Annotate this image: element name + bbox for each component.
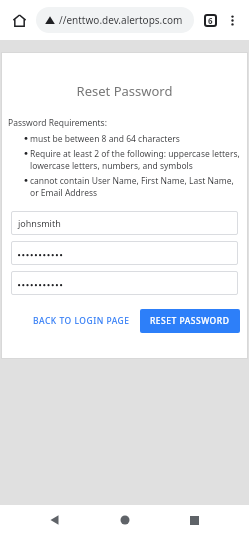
staticText: BACK TO LOGIN PAGE: [33, 315, 130, 327]
button[interactable]: //enttwo.dev.alertops.com: [36, 7, 194, 33]
button[interactable]: Home: [6, 7, 32, 33]
button[interactable]: Recent apps: [179, 505, 209, 535]
button[interactable]: [11, 271, 238, 295]
staticText: Password Requirements:: [8, 117, 107, 129]
button[interactable]: Back: [40, 505, 70, 535]
staticText: Reset Password: [1, 82, 248, 100]
staticText: johnsmith: [18, 217, 61, 229]
staticText: cannot contain User Name, First Name, La…: [30, 175, 241, 199]
staticText: Require at least 2 of the following: upp…: [30, 148, 241, 172]
staticText: RESET PASSWORD: [150, 315, 230, 327]
button[interactable]: Home: [110, 505, 140, 535]
staticText: 6: [208, 15, 213, 26]
staticText: //enttwo.dev.alertops.com: [59, 13, 183, 27]
staticText: must be between 8 and 64 characters: [30, 133, 180, 145]
button[interactable]: More options: [221, 9, 243, 31]
button[interactable]: BACK TO LOGIN PAGE: [27, 310, 136, 332]
button[interactable]: johnsmith: [11, 211, 238, 235]
button[interactable]: Tabs: [199, 9, 221, 31]
button[interactable]: RESET PASSWORD: [140, 309, 240, 333]
button[interactable]: [11, 241, 238, 265]
